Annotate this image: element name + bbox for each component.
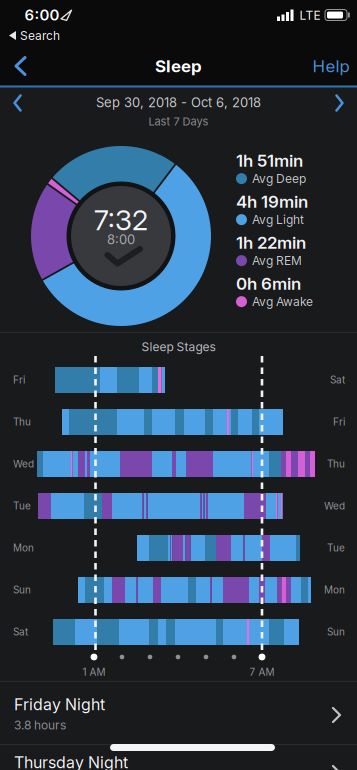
staticText: 0h 6min [236,273,301,294]
staticText: Wed [13,458,34,470]
staticText: Last 7 Days [148,115,208,128]
staticText: Mon [324,584,345,596]
staticText: 7 AM [249,666,274,678]
staticText: 3.8 hours [14,718,66,732]
staticText: 7:32 [94,203,148,236]
staticText: Help [312,56,349,76]
staticText: Tue [13,500,31,512]
staticText: Avg REM [252,254,302,268]
staticText: Search [20,28,60,43]
staticText: Mon [13,542,34,554]
button[interactable]: Back to Search [8,28,72,43]
staticText: LTE [299,8,320,23]
staticText: Avg Light [252,213,304,227]
staticText: Thu [327,458,345,470]
staticText: Friday Night [14,695,105,714]
staticText: Thursday Night [14,753,128,770]
button[interactable]: Next week [321,85,357,121]
staticText: Sep 30, 2018 - Oct 6, 2018 [96,95,261,110]
staticText: Sun [13,584,31,596]
staticText: Sleep [155,56,202,76]
staticText: 1h 22min [236,232,306,253]
staticText: Fri [13,374,25,386]
staticText: Avg Awake [252,295,313,309]
staticText: Sleep Stages [141,340,215,354]
staticText: 1 AM [82,666,105,678]
staticText: 8:00 [107,232,135,247]
button[interactable]: Friday Night [0,682,357,744]
staticText: Thu [13,416,31,428]
staticText: Sat [13,626,28,638]
staticText: 4h 19min [236,191,308,212]
staticText: Avg Deep [252,172,306,186]
button[interactable]: Thursday Night [0,745,357,770]
staticText: 6:00 [24,6,59,24]
staticText: Wed [324,500,345,512]
staticText: Fri [333,416,345,428]
button[interactable]: Back [6,48,50,86]
button[interactable]: Previous week [0,85,36,121]
button[interactable]: Help [301,47,357,85]
staticText: Sun [327,626,345,638]
staticText: Sat [330,374,345,386]
staticText: 1h 51min [236,150,303,171]
staticText: Tue [327,542,345,554]
